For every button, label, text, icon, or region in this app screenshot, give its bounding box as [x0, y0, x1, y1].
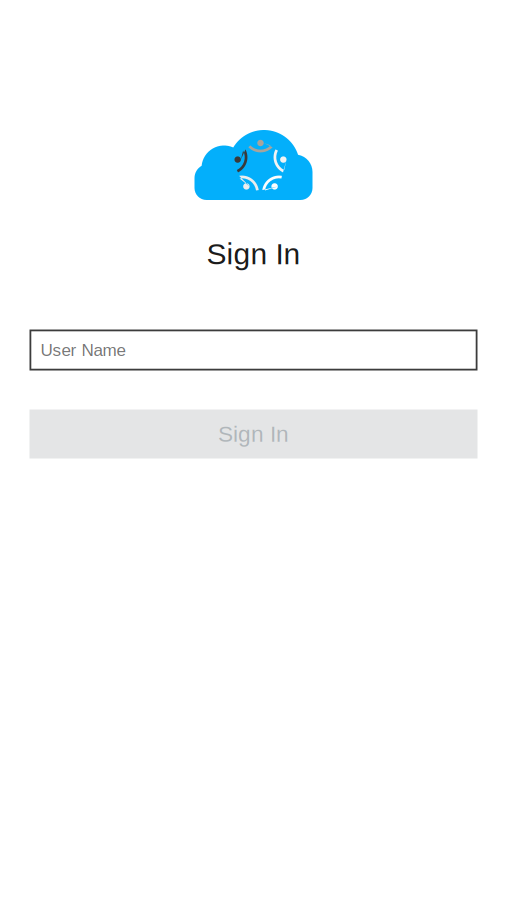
button[interactable]: Sign In [29, 409, 477, 458]
staticText: Sign In [206, 237, 300, 270]
staticText: User Name [40, 340, 125, 360]
staticText: Sign In [218, 421, 289, 447]
